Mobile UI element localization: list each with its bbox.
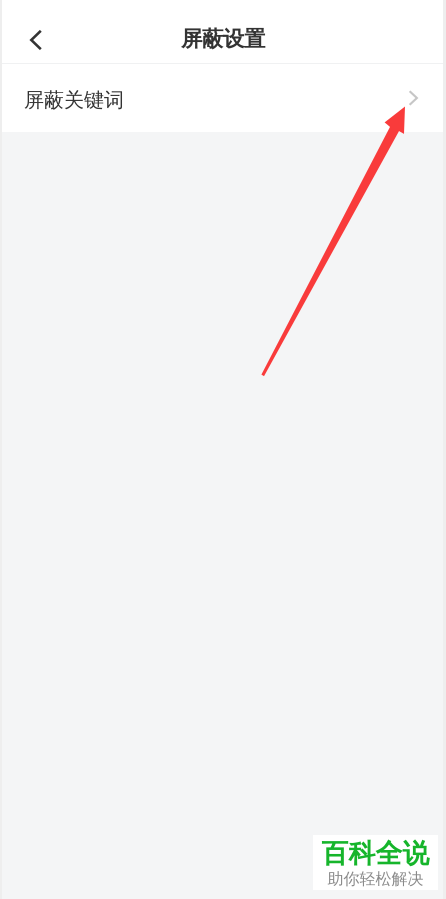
staticText: 助你轻松解决	[327, 869, 423, 889]
staticText: 屏蔽设置	[181, 26, 265, 52]
button[interactable]: 屏蔽关键词	[0, 64, 446, 132]
staticText: 百科全说	[321, 837, 429, 870]
staticText: 屏蔽关键词	[24, 88, 124, 112]
button[interactable]: Back	[0, 8, 64, 72]
